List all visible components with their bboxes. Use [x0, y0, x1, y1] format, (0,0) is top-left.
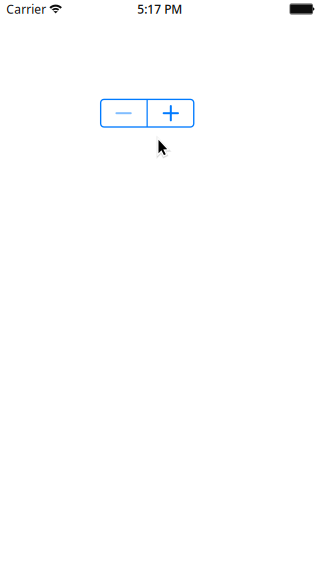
button[interactable]: Increment — [148, 99, 194, 127]
staticText: 5:17 PM — [137, 1, 182, 17]
button[interactable]: Decrement — [101, 99, 146, 127]
staticText: Carrier — [6, 1, 46, 17]
